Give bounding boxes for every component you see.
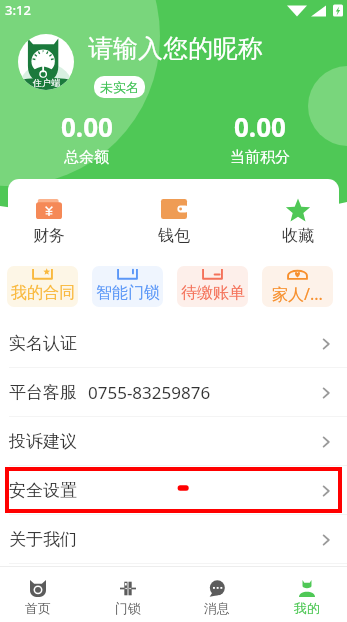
staticText: 平台客服 bbox=[9, 382, 77, 403]
button[interactable]: 财务 bbox=[26, 179, 72, 246]
button[interactable]: 首页 bbox=[18, 573, 58, 616]
staticText: 待缴账单 bbox=[181, 283, 245, 303]
staticText: 3:12 bbox=[5, 1, 31, 19]
staticText: 智能门锁 bbox=[96, 283, 160, 303]
button[interactable]: 0.00 bbox=[173, 109, 347, 167]
staticText: 实名认证 bbox=[9, 333, 77, 354]
button[interactable]: 关于我们 bbox=[0, 515, 347, 564]
staticText: 住户端 bbox=[33, 77, 60, 88]
staticText: 安全设置 bbox=[9, 480, 77, 501]
staticText: 门锁 bbox=[115, 600, 141, 616]
staticText: 我的合同 bbox=[11, 283, 75, 303]
staticText: 0.00 bbox=[234, 109, 286, 144]
button[interactable]: 0.00 bbox=[0, 109, 173, 167]
button[interactable]: 智能门锁 bbox=[92, 266, 163, 307]
button[interactable]: 我的合同 bbox=[7, 266, 78, 307]
button[interactable]: 钱包 bbox=[151, 179, 197, 246]
staticText: 关于我们 bbox=[9, 529, 77, 550]
staticText: 0755-83259876 bbox=[88, 381, 211, 404]
button[interactable]: 请输入您的昵称 bbox=[88, 33, 263, 64]
button[interactable]: Profile avatar bbox=[18, 34, 74, 90]
button[interactable]: 收藏 bbox=[275, 179, 321, 246]
staticText: 首页 bbox=[25, 600, 51, 616]
staticText: 投诉建议 bbox=[9, 431, 77, 452]
button[interactable]: 实名认证 bbox=[0, 319, 347, 368]
staticText: 收藏 bbox=[282, 226, 314, 246]
staticText: 0.00 bbox=[61, 109, 113, 144]
button[interactable]: 安全设置 bbox=[0, 466, 347, 515]
button[interactable]: 投诉建议 bbox=[0, 417, 347, 466]
staticText: 消息 bbox=[204, 600, 230, 616]
staticText: 未实名 bbox=[100, 79, 139, 95]
button[interactable]: 门锁 bbox=[108, 573, 148, 616]
button[interactable]: 消息 bbox=[197, 573, 237, 616]
staticText: 我的 bbox=[294, 600, 320, 616]
button[interactable]: 平台客服 bbox=[0, 368, 347, 417]
staticText: 钱包 bbox=[158, 226, 190, 246]
staticText: 家人/... bbox=[272, 283, 323, 305]
button[interactable]: 待缴账单 bbox=[177, 266, 248, 307]
button[interactable]: 家人/... bbox=[262, 266, 333, 307]
button[interactable]: 我的 bbox=[287, 573, 327, 616]
staticText: 总余额 bbox=[64, 148, 109, 167]
button[interactable]: 未实名 bbox=[94, 76, 145, 98]
staticText: 财务 bbox=[33, 226, 65, 246]
staticText: 当前积分 bbox=[230, 148, 290, 167]
